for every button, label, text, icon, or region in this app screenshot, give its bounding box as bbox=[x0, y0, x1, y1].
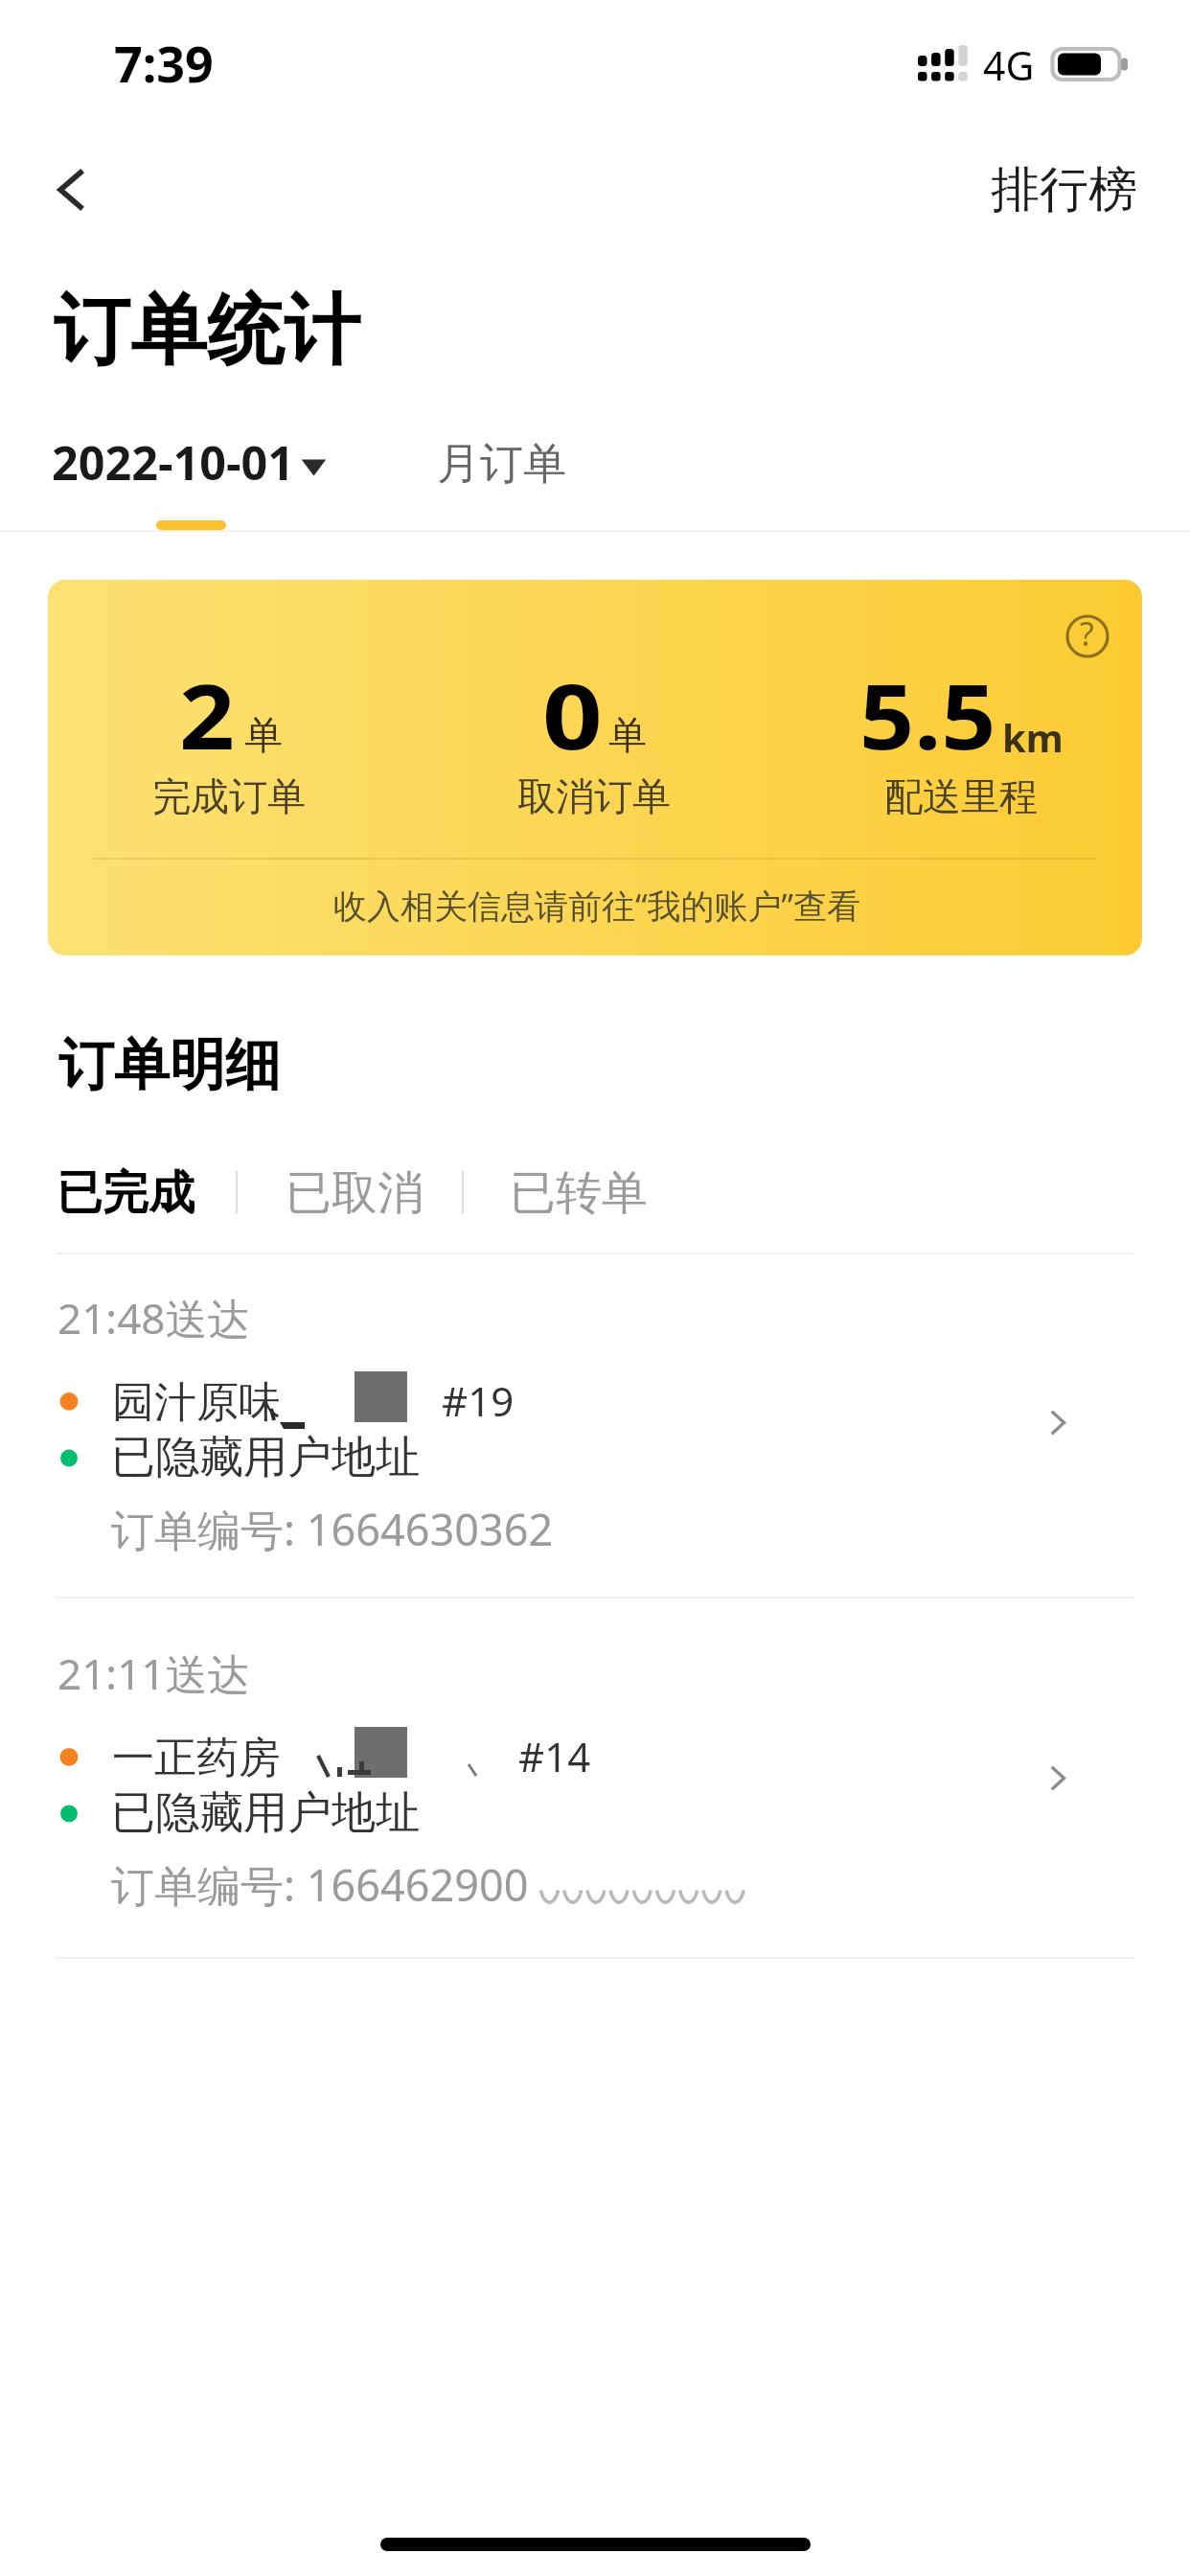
staticText: 21:48送达 bbox=[57, 1289, 250, 1346]
staticText: #19 bbox=[442, 1373, 515, 1428]
staticText: 已转单 bbox=[510, 1164, 648, 1222]
staticText: 完成订单 bbox=[152, 772, 306, 820]
button[interactable]: Help bbox=[1044, 593, 1133, 681]
staticText: 订单编号: 166462900 bbox=[111, 1855, 529, 1914]
staticText: 7:39 bbox=[114, 29, 214, 97]
staticText: ? bbox=[1080, 611, 1094, 655]
staticText: 一正药房 bbox=[112, 1732, 281, 1784]
button[interactable]: 已取消 bbox=[257, 1148, 460, 1236]
staticText: 取消订单 bbox=[517, 772, 671, 820]
staticText: km bbox=[1002, 711, 1064, 763]
button[interactable]: Back bbox=[19, 151, 96, 228]
staticText: 已取消 bbox=[286, 1164, 423, 1222]
staticText: 2022-10-01 bbox=[52, 430, 294, 494]
staticText: 配送里程 bbox=[884, 772, 1038, 820]
button[interactable]: 2022-10-01 bbox=[38, 422, 350, 521]
staticText: 5.5 bbox=[859, 655, 996, 776]
staticText: 排行榜 bbox=[991, 159, 1137, 220]
staticText: 月订单 bbox=[437, 437, 566, 492]
button[interactable]: 21:11送达 bbox=[0, 1621, 1190, 1946]
button[interactable]: 排行榜 bbox=[958, 144, 1150, 232]
staticText: 4G bbox=[983, 38, 1035, 92]
staticText: 订单统计 bbox=[54, 283, 360, 379]
button[interactable]: 已完成 bbox=[19, 1148, 234, 1236]
staticText: 园汁原味 bbox=[112, 1376, 281, 1429]
button[interactable]: 月订单 bbox=[402, 422, 594, 521]
staticText: 订单明细 bbox=[58, 1030, 281, 1100]
staticText: #14 bbox=[518, 1729, 591, 1783]
staticText: 2 bbox=[179, 655, 236, 776]
staticText: 订单编号: 1664630362 bbox=[111, 1500, 554, 1558]
staticText: 已隐藏用户地址 bbox=[111, 1785, 420, 1841]
button[interactable]: 21:48送达 bbox=[0, 1265, 1190, 1591]
staticText: 0 bbox=[542, 655, 603, 776]
staticText: 已完成 bbox=[57, 1164, 195, 1222]
staticText: 21:11送达 bbox=[57, 1644, 250, 1702]
button[interactable]: 已转单 bbox=[481, 1148, 673, 1236]
staticText: 单 bbox=[244, 711, 283, 759]
staticText: 已隐藏用户地址 bbox=[111, 1430, 420, 1485]
staticText: 单 bbox=[608, 711, 647, 759]
staticText: 收入相关信息请前往“我的账户”查看 bbox=[333, 883, 861, 929]
